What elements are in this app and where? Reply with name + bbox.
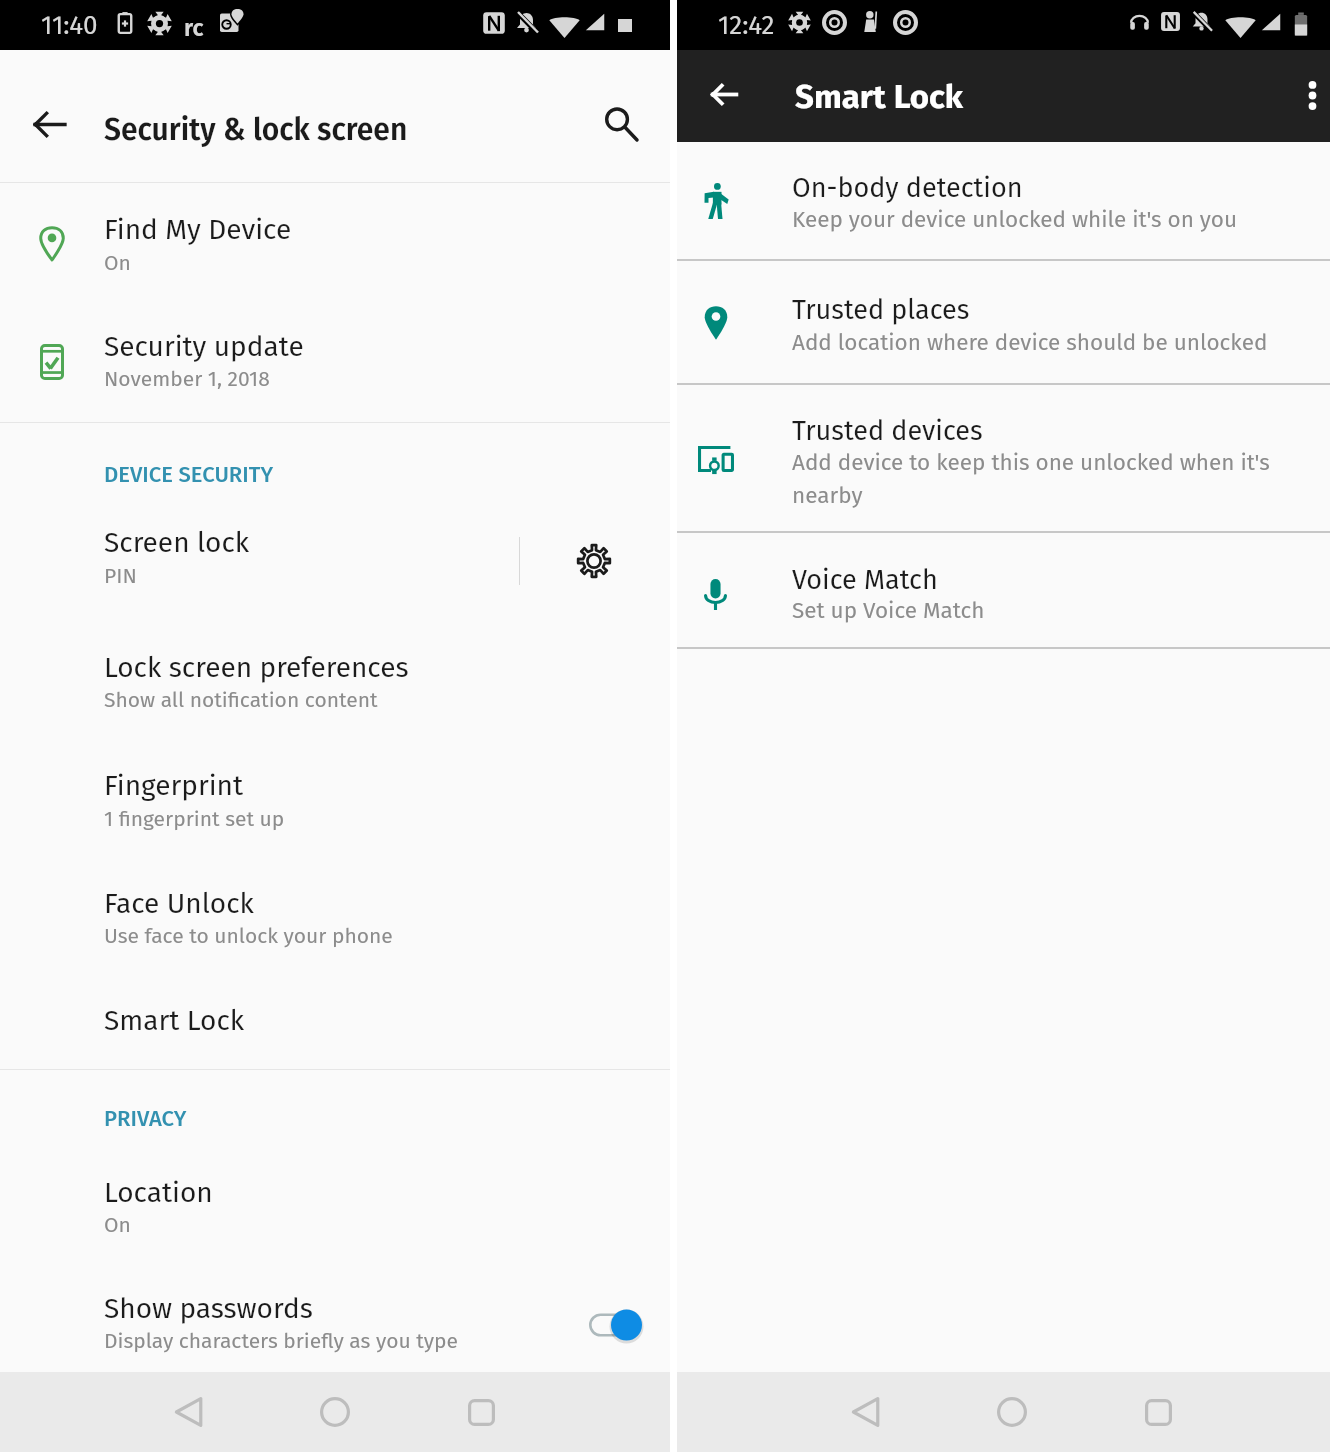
button[interactable]: Search: [587, 90, 655, 158]
staticText: Add device to keep this one unlocked whe…: [792, 449, 1270, 476]
staticText: Fingerprint: [104, 769, 244, 803]
staticText: Screen lock: [104, 526, 250, 560]
staticText: November 1, 2018: [104, 366, 270, 391]
button[interactable]: [0, 190, 670, 290]
staticText: Face Unlock: [104, 887, 254, 921]
staticText: DEVICE SECURITY: [104, 461, 274, 487]
button[interactable]: [677, 383, 1330, 530]
staticText: Use face to unlock your phone: [104, 923, 393, 948]
staticText: Find My Device: [104, 213, 292, 247]
staticText: Voice Match: [792, 564, 938, 596]
staticText: Smart Lock: [795, 77, 964, 117]
button[interactable]: Back: [116, 1372, 262, 1452]
button[interactable]: [0, 630, 670, 730]
staticText: On: [104, 1212, 131, 1237]
staticText: Location: [104, 1176, 213, 1210]
button[interactable]: [0, 1150, 670, 1250]
button[interactable]: Screen lock settings: [563, 530, 625, 592]
staticText: Set up Voice Match: [792, 597, 985, 624]
button[interactable]: Recent apps: [1085, 1372, 1232, 1452]
button[interactable]: Home: [262, 1372, 408, 1452]
staticText: nearby: [792, 482, 863, 509]
staticText: Security & lock screen: [104, 112, 408, 148]
button[interactable]: [0, 748, 670, 848]
staticText: Keep your device unlocked while it's on …: [792, 206, 1238, 233]
staticText: PRIVACY: [104, 1105, 187, 1131]
button[interactable]: [0, 498, 520, 598]
staticText: Add location where device should be unlo…: [792, 329, 1268, 356]
staticText: 11:40: [41, 10, 98, 41]
staticText: Show passwords: [104, 1292, 313, 1326]
staticText: Display characters briefly as you type: [104, 1328, 458, 1353]
staticText: Lock screen preferences: [104, 651, 409, 685]
button[interactable]: More options: [1284, 67, 1330, 123]
button[interactable]: [677, 143, 1330, 256]
staticText: Security update: [104, 330, 304, 364]
staticText: On: [104, 250, 131, 275]
staticText: Trusted devices: [792, 415, 983, 447]
staticText: 1 fingerprint set up: [104, 806, 285, 831]
staticText: Trusted places: [792, 294, 970, 326]
staticText: 12:42: [718, 10, 775, 41]
button[interactable]: Navigate up: [693, 63, 755, 125]
button[interactable]: [0, 985, 670, 1055]
button[interactable]: [0, 866, 670, 966]
button[interactable]: Back: [793, 1372, 939, 1452]
staticText: On-body detection: [792, 172, 1023, 204]
staticText: PIN: [104, 563, 137, 588]
button[interactable]: [0, 305, 670, 405]
button[interactable]: Recent apps: [408, 1372, 555, 1452]
staticText: rc: [184, 14, 204, 42]
button[interactable]: Navigate up: [16, 90, 84, 158]
staticText: Show all notification content: [104, 687, 378, 712]
button[interactable]: Home: [939, 1372, 1085, 1452]
button[interactable]: [677, 531, 1330, 646]
button[interactable]: [677, 257, 1330, 382]
button[interactable]: [0, 1270, 670, 1370]
staticText: Smart Lock: [104, 1004, 245, 1038]
